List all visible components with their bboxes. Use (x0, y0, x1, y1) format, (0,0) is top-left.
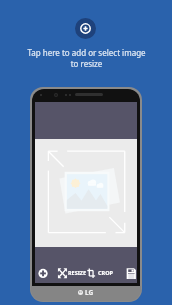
button[interactable]: Crop (86, 259, 114, 273)
button[interactable]: Save (124, 259, 136, 271)
staticText: LG (85, 288, 94, 297)
staticText: CROP (98, 269, 113, 276)
staticText: RESIZE (68, 269, 87, 276)
button[interactable]: Add image (38, 259, 52, 273)
button[interactable]: Add or select image (75, 18, 96, 39)
staticText: Tap here to add or select image to resiz… (27, 47, 146, 69)
button[interactable]: Resize (57, 259, 85, 273)
